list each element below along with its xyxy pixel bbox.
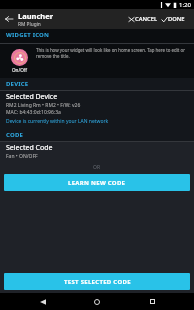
button[interactable]: TEST SELECTED CODE	[4, 273, 190, 290]
button[interactable]: LEARN NEW CODE	[4, 174, 190, 191]
button[interactable]: Selected Code	[0, 142, 194, 160]
staticText: DEVICE	[6, 80, 29, 88]
button[interactable]: Home	[85, 293, 109, 310]
staticText: CODE	[6, 131, 24, 139]
staticText: On/Off	[12, 67, 27, 73]
staticText: RM Plugin	[18, 21, 41, 28]
staticText: RM2 Living Rm • RM2 • F/W: v26	[6, 102, 81, 109]
staticText: MAC: b4:43:0d:10:96:3a	[6, 109, 61, 116]
button[interactable]: CANCEL	[126, 9, 159, 29]
staticText: Fan • ON/OFF	[6, 153, 38, 160]
button[interactable]: On/Off	[0, 44, 194, 73]
staticText: Selected Device	[6, 92, 58, 102]
button[interactable]: DONE	[159, 9, 194, 29]
button[interactable]: Recents	[140, 293, 164, 310]
staticText: Device is currently within your LAN netw…	[6, 118, 109, 125]
staticText: Selected Code	[6, 143, 53, 153]
staticText: LEARN NEW CODE	[68, 179, 126, 187]
staticText: OR	[93, 164, 101, 171]
staticText: DONE	[168, 15, 185, 23]
button[interactable]: Back	[31, 293, 55, 310]
staticText: This is how your widget will look like o…	[36, 47, 186, 60]
button[interactable]: Back	[0, 10, 18, 28]
staticText: CANCEL	[135, 15, 157, 23]
staticText: TEST SELECTED CODE	[64, 278, 131, 286]
staticText: 1:20	[179, 1, 191, 9]
staticText: WIDGET ICON	[6, 31, 50, 39]
button[interactable]: Selected Device	[0, 91, 194, 125]
staticText: Launcher	[18, 11, 54, 21]
